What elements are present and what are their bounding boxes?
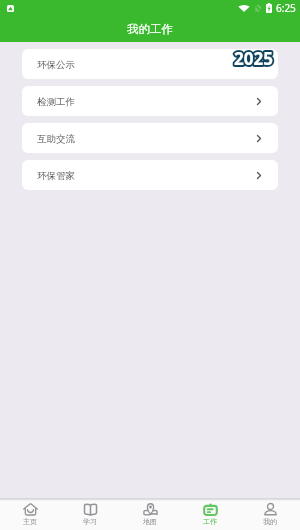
button[interactable]: Work — [180, 499, 240, 530]
staticText: 6:25 — [276, 1, 296, 15]
button[interactable]: Home — [0, 499, 60, 530]
button[interactable]: 环保公示 — [22, 49, 278, 79]
staticText: 主页 — [23, 517, 37, 526]
staticText: 学习 — [83, 517, 97, 526]
button[interactable]: 检测工作 — [22, 86, 278, 116]
button[interactable]: 互助交流 — [22, 123, 278, 153]
button[interactable]: 环保管家 — [22, 160, 278, 190]
button[interactable]: Map — [120, 499, 180, 530]
staticText: 环保公示 — [37, 59, 75, 71]
staticText: 地图 — [143, 517, 157, 526]
staticText: 环保管家 — [37, 170, 75, 182]
staticText: 检测工作 — [37, 96, 75, 108]
staticText: 我的工作 — [127, 22, 173, 36]
staticText: 2025 — [234, 49, 273, 70]
staticText: 工作 — [203, 517, 217, 526]
staticText: 2025 — [234, 49, 273, 70]
button[interactable]: Study — [60, 499, 120, 530]
button[interactable]: Profile — [240, 499, 300, 530]
staticText: 我的 — [263, 517, 277, 526]
staticText: 互助交流 — [37, 133, 75, 145]
